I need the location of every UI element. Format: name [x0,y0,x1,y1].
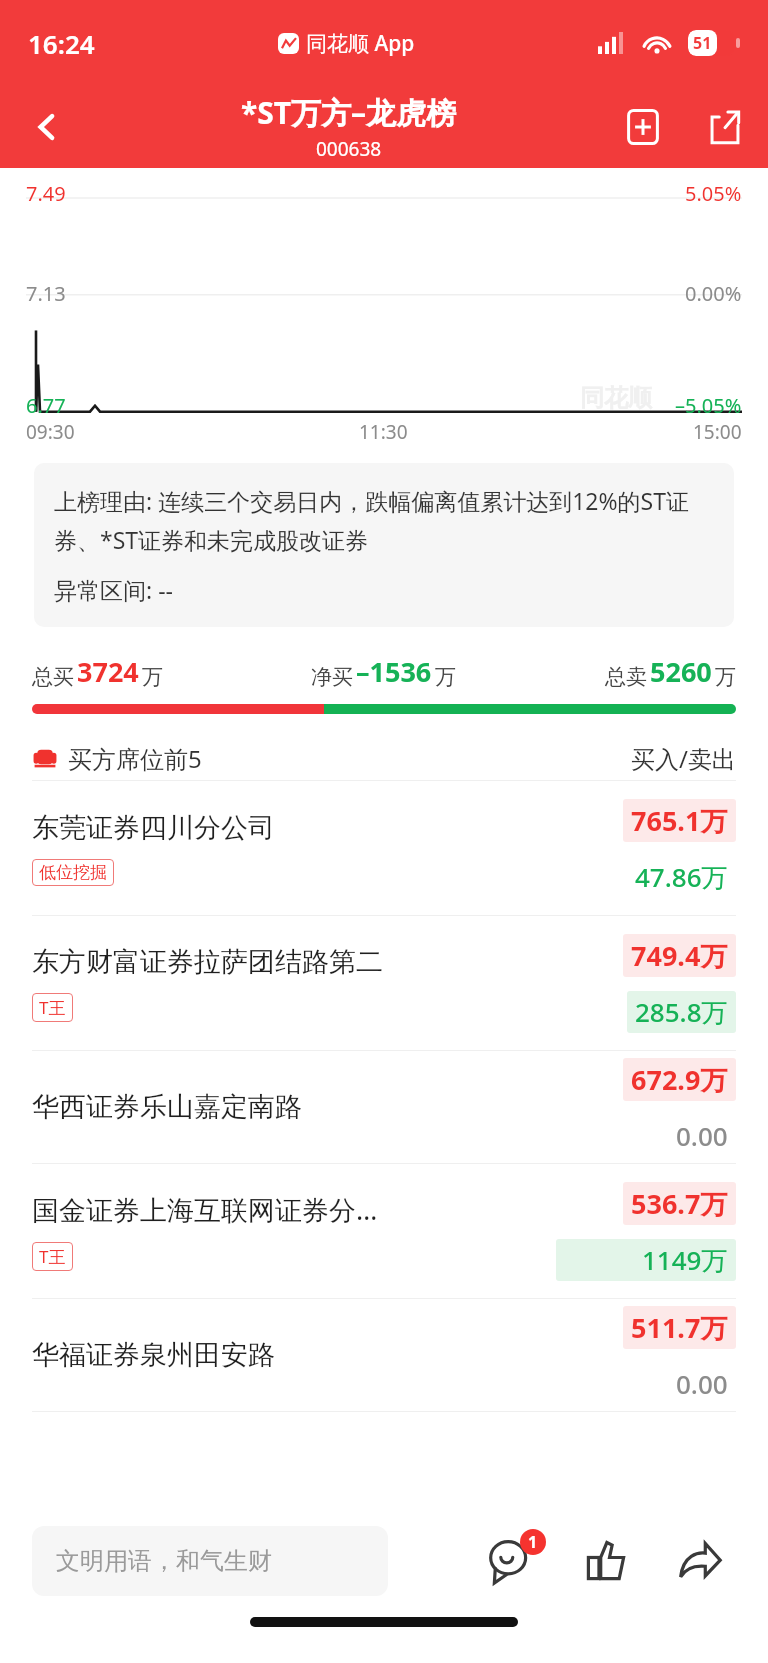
staticText: 华西证券乐山嘉定南路 [32,1090,302,1124]
staticText: 同花顺 [580,383,652,413]
staticText: –5.05% [675,392,742,419]
staticText: 东莞证券四川分公司 [32,811,275,845]
button[interactable]: 文明用语，和气生财 [32,1526,388,1596]
staticText: 5260 [650,653,712,690]
staticText: 万 [435,664,456,690]
staticText: 净买 [311,664,353,690]
staticText: 低位挖掘 [39,862,107,883]
staticText: 文明用语，和气生财 [56,1546,272,1576]
staticText: –1536 [356,653,432,690]
staticText: 3724 [77,653,139,690]
staticText: 000638 [316,136,382,162]
button[interactable]: Back [0,86,94,168]
staticText: 上榜理由: 连续三个交易日内，跌幅偏离值累计达到12%的ST证券、*ST证券和未… [54,485,714,556]
staticText: T王 [39,1245,66,1268]
button[interactable]: Comments [472,1523,548,1599]
staticText: 6.77 [26,392,66,419]
staticText: 5.05% [685,180,742,207]
staticText: 672.9万 [631,1061,728,1098]
staticText: 15:00 [693,419,742,445]
staticText: 国金证券上海互联网证券分… [32,1191,378,1228]
staticText: 总买 [32,664,74,690]
staticText: 万 [715,664,736,690]
staticText: 华福证券泉州田安路 [32,1338,275,1372]
button[interactable]: Add to watchlist [604,86,682,168]
staticText: 万 [142,664,163,690]
button[interactable]: 华西证券乐山嘉定南路 [0,1051,768,1164]
staticText: 同花顺 App [306,29,415,58]
staticText: 51 [693,32,712,54]
staticText: 285.8万 [635,994,728,1030]
staticText: 1149万 [642,1242,728,1278]
staticText: 16:24 [28,26,95,61]
button[interactable]: 东莞证券四川分公司 [0,781,768,916]
staticText: 总卖 [605,664,647,690]
staticText: 0.00 [676,1366,728,1401]
staticText: 536.7万 [631,1185,728,1222]
staticText: 511.7万 [631,1309,728,1346]
staticText: 47.86万 [635,859,728,895]
button[interactable]: 东方财富证券拉萨团结路第二 [0,916,768,1051]
staticText: 7.13 [26,280,66,307]
staticText: 0.00 [676,1118,728,1153]
staticText: 0.00% [685,280,742,307]
staticText: 7.49 [26,180,66,207]
button[interactable]: Like [570,1525,642,1597]
staticText: T王 [39,996,66,1019]
staticText: 765.1万 [631,802,728,839]
staticText: 1 [528,1531,538,1553]
staticText: 09:30 [26,419,75,445]
staticText: 749.4万 [631,937,728,974]
button[interactable]: Share [682,86,768,168]
button[interactable]: 华福证券泉州田安路 [0,1299,768,1412]
staticText: 买入/卖出 [631,742,736,775]
staticText: *ST万方–龙虎榜 [241,92,457,133]
staticText: 11:30 [359,419,408,445]
staticText: 买方席位前5 [68,742,202,775]
button[interactable]: 国金证券上海互联网证券分… [0,1164,768,1299]
button[interactable]: Share [664,1525,736,1597]
staticText: 异常区间: -- [54,574,173,605]
staticText: 东方财富证券拉萨团结路第二 [32,945,383,979]
